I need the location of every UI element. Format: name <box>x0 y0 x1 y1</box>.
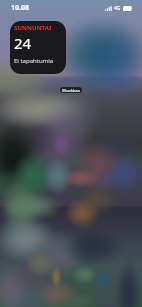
button[interactable]: SUNNUNTAI <box>10 21 66 74</box>
staticText: SUNNUNTAI <box>14 24 52 32</box>
staticText: 4G <box>114 5 121 12</box>
staticText: Muokkaa <box>62 88 80 93</box>
staticText: 10.08 <box>11 3 29 13</box>
staticText: 24 <box>14 33 32 53</box>
staticText: Ei tapahtumia <box>14 57 54 65</box>
button[interactable]: Muokkaa <box>60 87 82 93</box>
